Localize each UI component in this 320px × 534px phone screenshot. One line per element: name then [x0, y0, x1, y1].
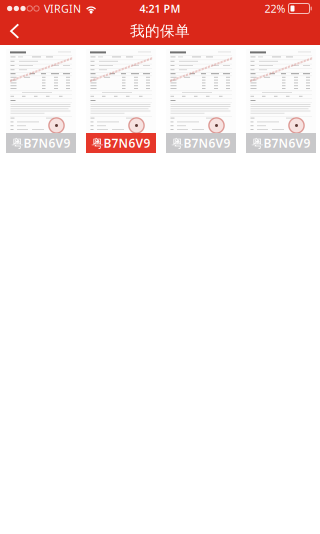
- staticText: 粤B7N6V9: [11, 135, 70, 151]
- button[interactable]: 粤B7N6V9: [166, 49, 236, 153]
- button[interactable]: Back: [0, 17, 52, 45]
- staticText: 粤B7N6V9: [91, 135, 150, 151]
- staticText: VIRGIN: [44, 1, 81, 16]
- button[interactable]: 粤B7N6V9: [246, 49, 316, 153]
- staticText: 我的保单: [130, 22, 190, 40]
- staticText: 4:21 PM: [139, 1, 180, 16]
- button[interactable]: 粤B7N6V9: [86, 49, 156, 153]
- button[interactable]: 粤B7N6V9: [6, 49, 76, 153]
- staticText: 粤B7N6V9: [251, 135, 310, 151]
- staticText: 粤B7N6V9: [171, 135, 230, 151]
- staticText: 22%: [264, 1, 285, 16]
